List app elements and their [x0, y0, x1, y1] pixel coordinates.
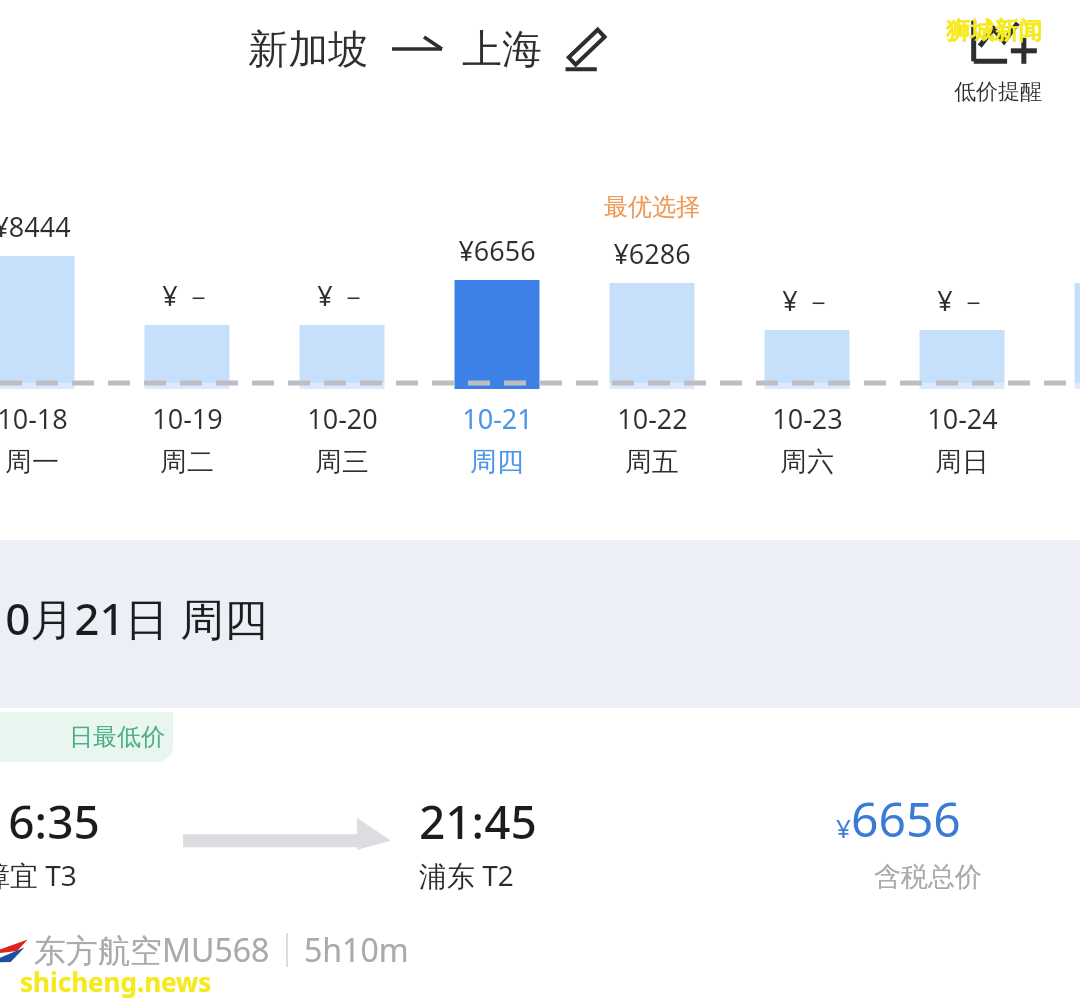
- staticText: 上海: [462, 24, 542, 74]
- staticText: 10-23: [772, 400, 843, 437]
- staticText: 10-19: [152, 400, 223, 437]
- staticText: 10-21: [462, 400, 533, 437]
- staticText: 浦东 T2: [419, 856, 514, 894]
- staticText: 周六: [780, 445, 834, 479]
- staticText: 低价提醒: [954, 78, 1042, 106]
- button[interactable]: 10-21: [402, 400, 592, 479]
- staticText: shicheng.news: [20, 964, 212, 999]
- staticText: ¥ －: [317, 277, 367, 314]
- button[interactable]: 日最低价: [0, 708, 1080, 1001]
- button[interactable]: ¥8444: [0, 208, 127, 245]
- staticText: 10-22: [617, 400, 688, 437]
- staticText: ¥: [836, 810, 851, 845]
- staticText: 10月21日 周四: [0, 588, 269, 648]
- button[interactable]: 10-24: [867, 400, 1057, 479]
- staticText: 樟宜 T3: [0, 856, 77, 894]
- staticText: 周四: [470, 445, 524, 479]
- staticText: 10-24: [927, 400, 998, 437]
- staticText: ¥6286: [613, 235, 691, 272]
- button[interactable]: ¥ －: [867, 282, 1057, 319]
- button[interactable]: ¥6656: [402, 232, 592, 269]
- button[interactable]: 10-22: [557, 400, 747, 479]
- button[interactable]: 低价提醒: [928, 16, 1068, 106]
- button[interactable]: ¥ －: [712, 282, 902, 319]
- button[interactable]: ¥6286: [557, 235, 747, 272]
- staticText: 16:35: [0, 790, 100, 853]
- staticText: 含税总价: [874, 860, 982, 894]
- staticText: 6656: [851, 786, 961, 851]
- staticText: ¥8444: [0, 208, 71, 245]
- staticText: 周日: [935, 445, 989, 479]
- staticText: 狮城新闻: [946, 16, 1042, 46]
- staticText: 10-18: [0, 400, 68, 437]
- staticText: 5h10m: [304, 928, 409, 972]
- button[interactable]: 10-23: [712, 400, 902, 479]
- button[interactable]: 新加坡: [248, 24, 606, 74]
- staticText: 10-20: [307, 400, 378, 437]
- staticText: 周三: [315, 445, 369, 479]
- staticText: ¥6656: [458, 232, 536, 269]
- staticText: ¥ －: [937, 282, 987, 319]
- button[interactable]: ¥ －: [247, 277, 437, 314]
- button[interactable]: 10-19: [92, 400, 282, 479]
- button[interactable]: ¥ －: [92, 277, 282, 314]
- button[interactable]: 10-20: [247, 400, 437, 479]
- staticText: 周一: [5, 445, 59, 479]
- staticText: ¥ －: [782, 282, 832, 319]
- staticText: 21:45: [419, 790, 537, 853]
- staticText: 新加坡: [248, 24, 368, 74]
- staticText: 最优选择: [604, 192, 700, 222]
- staticText: 日最低价: [69, 722, 165, 752]
- staticText: 周二: [160, 445, 214, 479]
- staticText: 周五: [625, 445, 679, 479]
- staticText: ¥ －: [162, 277, 212, 314]
- staticText: 东方航空MU568: [34, 928, 270, 972]
- button[interactable]: 10-18: [0, 400, 127, 479]
